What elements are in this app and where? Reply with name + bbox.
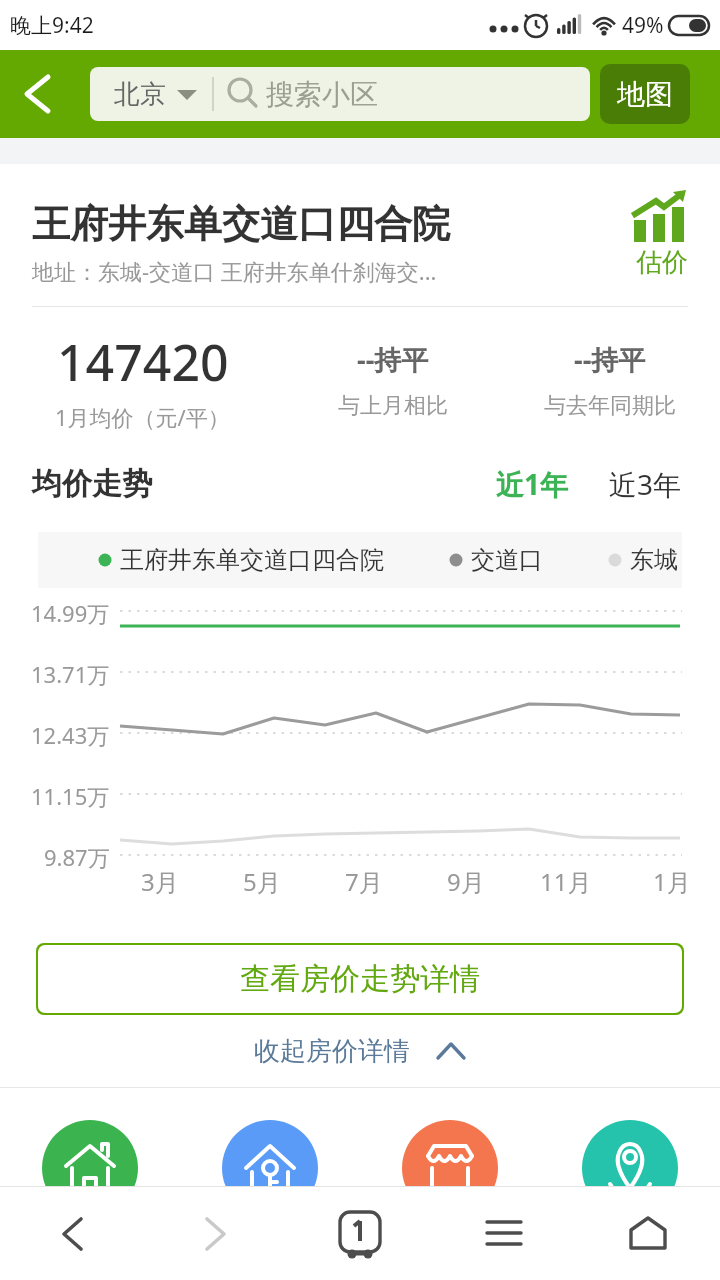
staticText: 近1年 <box>496 465 569 503</box>
staticText: 49% <box>622 11 664 40</box>
staticText: 地址：东城-交道口 王府井东单什刹海交... <box>32 256 437 286</box>
staticText: 12.43万 <box>31 720 110 750</box>
staticText: 7月 <box>345 865 383 898</box>
staticText: 估价 <box>636 246 688 279</box>
staticText: 查看房价走势详情 <box>240 960 480 998</box>
staticText: 收起房价详情 <box>254 1035 410 1068</box>
staticText: 5月 <box>243 865 281 898</box>
staticText: 147420 <box>57 328 229 396</box>
staticText: 王府井东单交道口四合院 <box>120 545 384 575</box>
staticText: 王府井东单交道口四合院 <box>32 200 450 248</box>
staticText: 北京 <box>114 78 166 111</box>
staticText: 13.71万 <box>31 659 110 689</box>
staticText: 近3年 <box>609 465 682 503</box>
staticText: 14.99万 <box>31 598 110 628</box>
staticText: 与去年同期比 <box>544 392 676 420</box>
staticText: 东城 <box>630 545 678 575</box>
staticText: 与上月相比 <box>338 392 448 420</box>
staticText: 搜索小区 <box>266 77 378 112</box>
staticText: --持平 <box>357 341 429 378</box>
staticText: 11.15万 <box>31 781 110 811</box>
staticText: 交道口 <box>471 545 543 575</box>
staticText: 1月均价（元/平） <box>55 402 230 432</box>
staticText: 9.87万 <box>44 842 110 872</box>
staticText: 9月 <box>447 865 485 898</box>
staticText: --持平 <box>574 341 646 378</box>
staticText: 11月 <box>540 865 592 898</box>
staticText: 晚上9:42 <box>10 11 94 40</box>
staticText: 地图 <box>617 77 673 112</box>
staticText: 1月 <box>653 865 691 898</box>
staticText: 3月 <box>141 865 179 898</box>
staticText: 均价走势 <box>32 465 152 503</box>
